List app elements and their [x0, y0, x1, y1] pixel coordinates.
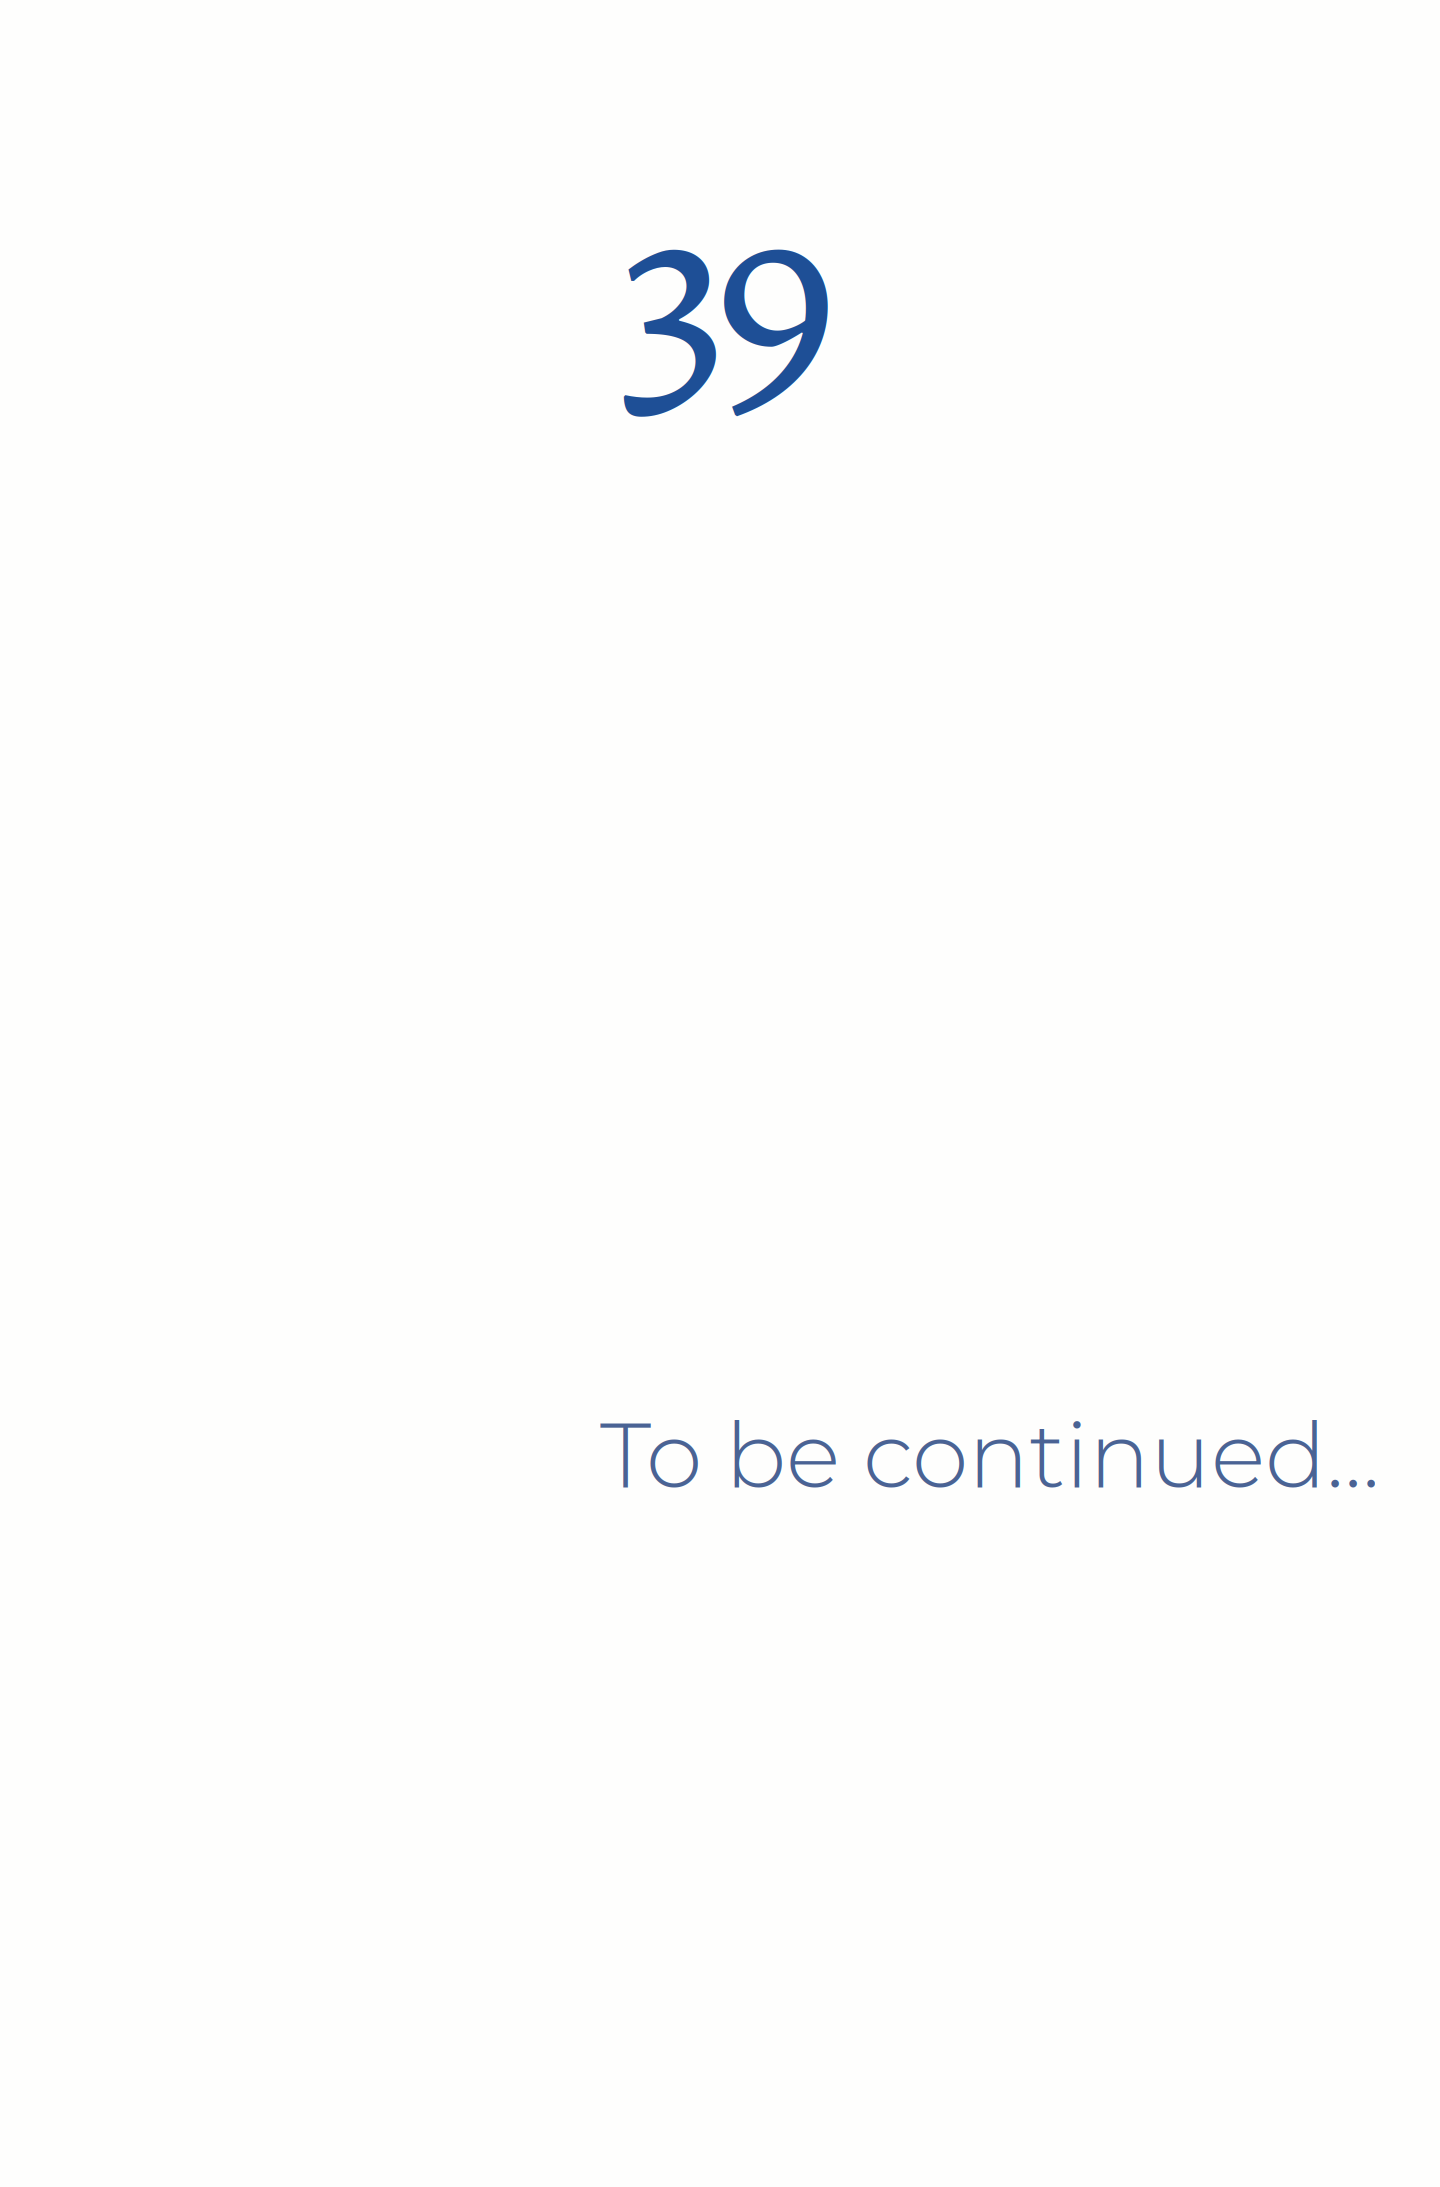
staticText: To be continued...	[600, 1400, 1380, 1510]
staticText: 39	[617, 110, 838, 482]
